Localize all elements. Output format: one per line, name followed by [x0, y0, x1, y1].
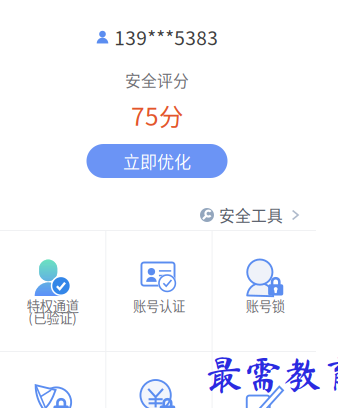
staticText: (已验证) [28, 308, 77, 327]
button[interactable]: 立即优化 [86, 144, 227, 178]
staticText: 最需教育 [205, 355, 338, 394]
staticText: 账号锁 [246, 296, 285, 315]
staticText: 立即优化 [123, 149, 191, 173]
button[interactable]: 安全工具 [200, 204, 302, 226]
button[interactable]: 账号认证 [106, 231, 212, 351]
staticText: 139***5383 [114, 23, 218, 51]
staticText: 75分 [131, 97, 183, 133]
button[interactable]: 安全反馈 [213, 352, 318, 408]
staticText: 安全评分 [125, 69, 189, 91]
staticText: 安全工具 [219, 204, 283, 226]
staticText: 账号认证 [133, 296, 185, 315]
staticText: 特权通道 [27, 296, 79, 315]
button[interactable]: 账号锁 [213, 231, 318, 351]
button[interactable]: 特权通道 [0, 231, 105, 351]
button[interactable]: 支付保护 [106, 352, 212, 408]
button[interactable]: 隐私保护 [0, 352, 105, 408]
